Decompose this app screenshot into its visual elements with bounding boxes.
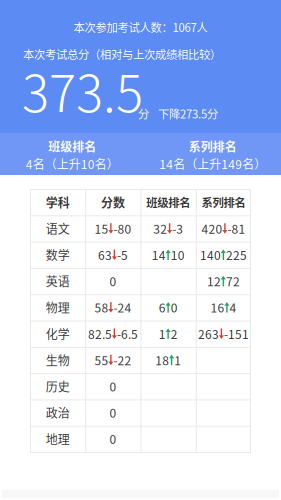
staticText: 0	[109, 404, 116, 421]
staticText: 82.5	[88, 325, 112, 342]
staticText: 225	[226, 246, 247, 263]
staticText: 班级排名	[146, 194, 190, 210]
staticText: 63	[98, 246, 112, 263]
staticText: 14	[152, 246, 166, 263]
staticText: 4名（上升10名）	[26, 155, 119, 172]
staticText: 分数	[101, 193, 125, 211]
staticText: 14名（上升149名）	[159, 155, 266, 172]
staticText: 0	[109, 378, 116, 395]
staticText: 物理	[46, 299, 70, 316]
staticText: 化学	[46, 325, 70, 342]
staticText: 15	[94, 220, 108, 237]
staticText: 2	[171, 325, 178, 342]
staticText: -5	[117, 246, 128, 263]
staticText: 12	[207, 272, 221, 290]
staticText: -22	[113, 351, 131, 369]
staticText: -24	[113, 299, 131, 316]
staticText: 系列排名	[201, 194, 245, 210]
staticText: 16	[210, 299, 224, 316]
staticText: 数学	[46, 246, 70, 263]
staticText: 分	[138, 105, 149, 122]
staticText: 英语	[46, 272, 70, 290]
staticText: 政治	[46, 404, 70, 421]
staticText: -81	[227, 220, 245, 237]
staticText: 历史	[46, 378, 70, 395]
staticText: 32	[153, 220, 167, 237]
staticText: 263	[198, 325, 219, 342]
staticText: -3	[172, 220, 183, 237]
staticText: 55	[94, 351, 108, 369]
staticText: 系列排名	[189, 138, 237, 155]
staticText: -6.5	[117, 325, 138, 342]
staticText: 地理	[46, 430, 70, 448]
staticText: 1	[174, 351, 181, 369]
staticText: 学科	[46, 193, 70, 211]
staticText: 0	[171, 299, 178, 316]
staticText: 班级排名	[48, 138, 96, 155]
staticText: 140	[200, 246, 221, 263]
staticText: 18	[155, 351, 169, 369]
staticText: 72	[226, 272, 240, 290]
staticText: 语文	[46, 220, 70, 237]
staticText: -80	[113, 220, 131, 237]
staticText: 生物	[46, 351, 70, 369]
staticText: 0	[109, 272, 116, 290]
staticText: 本次考试总分（相对与上次成绩相比较）	[23, 46, 221, 62]
staticText: 0	[109, 430, 116, 448]
staticText: -151	[224, 325, 249, 342]
button[interactable]: 系列排名	[142, 134, 281, 176]
staticText: 本次参加考试人数：1067人	[73, 19, 207, 35]
staticText: 10	[171, 246, 185, 263]
staticText: 58	[94, 299, 108, 316]
staticText: 373.5	[22, 53, 143, 127]
staticText: 4	[229, 299, 236, 316]
staticText: 1	[159, 325, 166, 342]
staticText: 6	[159, 299, 166, 316]
staticText: 420	[201, 220, 222, 237]
button[interactable]: 班级排名	[2, 134, 142, 176]
staticText: 下降273.5分	[158, 105, 218, 122]
